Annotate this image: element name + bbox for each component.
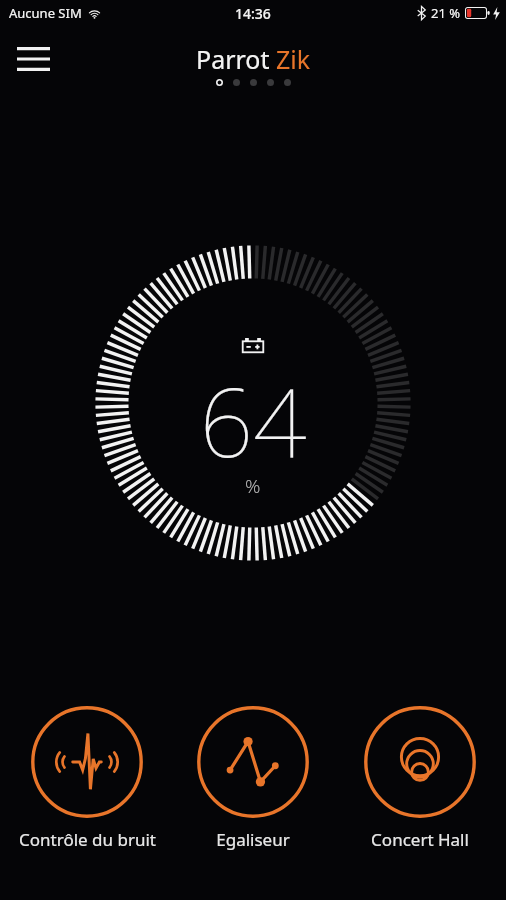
staticText: Contrôle du bruit (19, 828, 156, 851)
staticText: 14:36 (235, 4, 271, 23)
button[interactable]: Egaliseur (173, 706, 333, 851)
staticText: 21 % (431, 4, 461, 22)
button[interactable]: Contrôle du bruit (7, 706, 167, 851)
button[interactable]: Menu (8, 36, 58, 82)
staticText: % (245, 473, 261, 499)
staticText: Egaliseur (216, 828, 290, 851)
staticText: Parrot Zik (196, 42, 311, 76)
staticText: 64 (199, 357, 307, 485)
staticText: Aucune SIM (9, 4, 82, 22)
staticText: Concert Hall (371, 828, 469, 851)
button[interactable]: Concert Hall (340, 706, 500, 851)
